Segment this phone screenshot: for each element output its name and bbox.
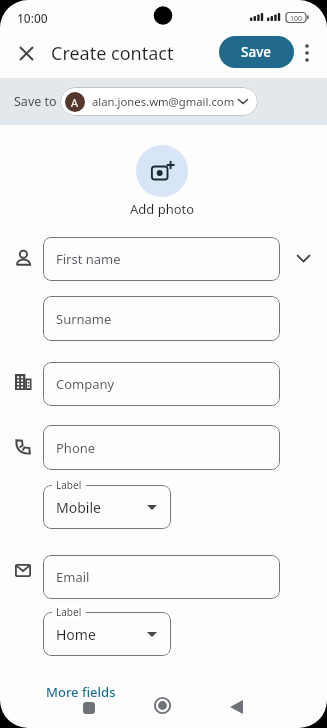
button[interactable] — [136, 145, 188, 197]
button[interactable]: First name — [43, 237, 280, 281]
staticText: Home — [56, 625, 96, 644]
staticText: Save to — [14, 93, 57, 110]
staticText: Mobile — [56, 498, 101, 517]
button[interactable]: More fields — [46, 683, 116, 701]
button[interactable]: Company — [43, 362, 280, 406]
staticText: 10:00 — [17, 10, 48, 26]
staticText: Surname — [56, 310, 112, 328]
staticText: Phone — [56, 439, 96, 457]
button[interactable]: Home — [43, 612, 171, 656]
staticText: Add photo — [130, 200, 195, 218]
button[interactable]: Surname — [43, 296, 280, 341]
staticText: Email — [56, 568, 90, 586]
button[interactable]: Mobile — [43, 485, 171, 529]
button[interactable]: Phone — [43, 425, 280, 470]
button[interactable]: Email — [43, 555, 280, 599]
staticText: Label — [56, 605, 82, 619]
button[interactable] — [296, 39, 318, 67]
button[interactable]: Save — [219, 36, 294, 68]
button[interactable] — [290, 245, 316, 271]
staticText: First name — [56, 250, 121, 268]
staticText: Save — [241, 43, 272, 61]
staticText: Company — [56, 375, 115, 393]
button[interactable] — [229, 699, 244, 715]
staticText: Label — [56, 478, 82, 492]
button[interactable] — [83, 702, 95, 714]
staticText: Create contact — [51, 41, 174, 66]
staticText: alan.jones.wm@gmail.com — [92, 94, 235, 109]
staticText: More fields — [46, 683, 116, 701]
staticText: A — [71, 95, 79, 110]
staticText: 100 — [290, 14, 303, 24]
button[interactable]: A — [60, 87, 258, 116]
button[interactable] — [12, 39, 40, 67]
button[interactable] — [154, 697, 171, 714]
